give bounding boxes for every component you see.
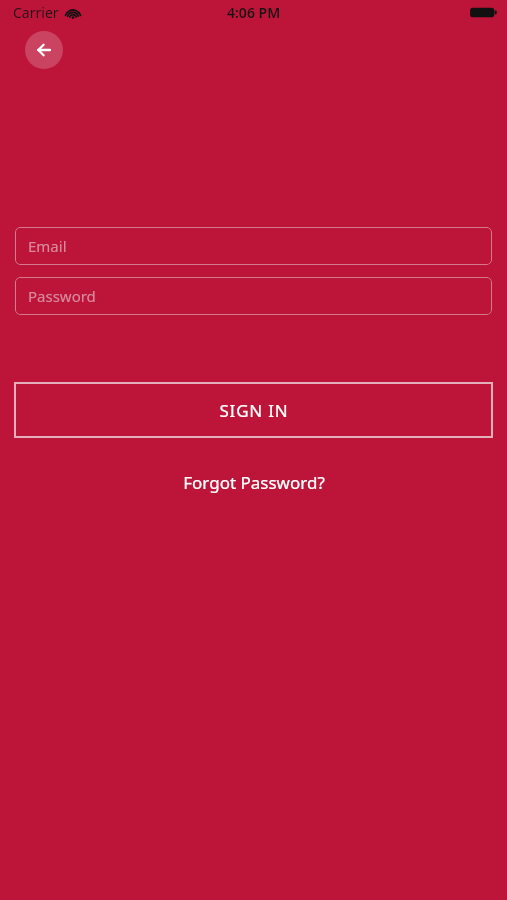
staticText: Carrier bbox=[13, 3, 59, 22]
button[interactable]: Back bbox=[25, 31, 63, 69]
button[interactable]: Email bbox=[15, 227, 492, 265]
button[interactable]: SIGN IN bbox=[14, 382, 493, 438]
button[interactable]: Forgot Password? bbox=[167, 465, 341, 500]
staticText: 4:06 PM bbox=[227, 3, 281, 22]
staticText: Email bbox=[28, 236, 67, 256]
staticText: SIGN IN bbox=[219, 399, 289, 422]
button[interactable]: Password bbox=[15, 277, 492, 315]
staticText: Password bbox=[28, 286, 96, 306]
staticText: Forgot Password? bbox=[183, 471, 325, 494]
